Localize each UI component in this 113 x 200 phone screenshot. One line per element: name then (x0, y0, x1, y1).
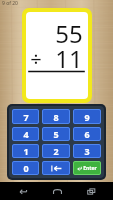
button[interactable]: 9 (73, 109, 101, 124)
button[interactable]: 55 (22, 8, 92, 103)
button[interactable]: 0 (12, 161, 39, 175)
button[interactable]: 2 (42, 144, 70, 158)
button[interactable]: 7 (12, 109, 39, 124)
staticText: 0 (23, 162, 29, 174)
staticText: 8 (53, 111, 59, 123)
staticText: 7 (23, 111, 29, 123)
staticText: 11 (55, 42, 83, 75)
staticText: 5 (53, 128, 59, 140)
staticText: 6 (84, 128, 90, 140)
button[interactable]: 3 (73, 144, 101, 158)
button[interactable]: 1 (12, 144, 39, 158)
staticText: ÷ (30, 45, 42, 72)
button[interactable]: 6 (73, 127, 101, 141)
staticText: Enter (83, 165, 97, 172)
staticText: 9 (84, 111, 90, 123)
staticText: 1 (23, 145, 29, 157)
staticText: 9 of 20 (2, 0, 18, 7)
button[interactable]: 8 (42, 109, 70, 124)
staticText: 2 (53, 145, 59, 157)
button[interactable]: Recents (79, 182, 103, 200)
button[interactable]: Enter (73, 161, 101, 175)
staticText: 3 (84, 145, 90, 157)
button[interactable]: Backspace (42, 161, 70, 175)
button[interactable]: 5 (42, 127, 70, 141)
button[interactable]: Home (45, 182, 69, 200)
button[interactable]: Back (10, 182, 34, 200)
button[interactable]: 4 (12, 127, 39, 141)
staticText: 4 (23, 128, 29, 140)
staticText: 55 (55, 17, 83, 50)
